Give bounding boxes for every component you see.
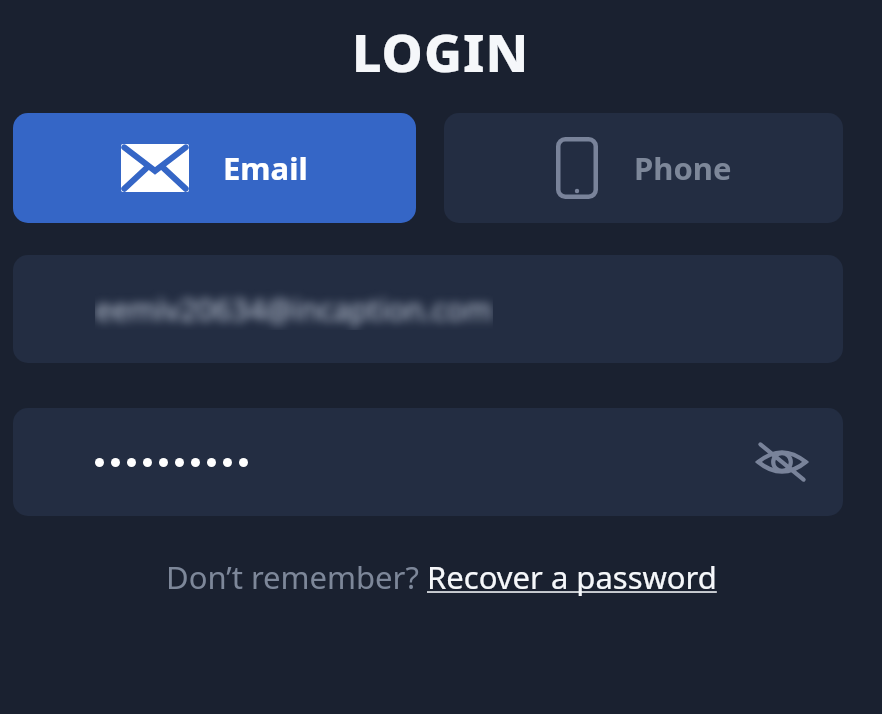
staticText: Don’t remember? (166, 556, 427, 598)
staticText: Email (223, 147, 308, 189)
button[interactable]: Email (13, 113, 416, 223)
staticText: LOGIN (352, 16, 530, 87)
button[interactable]: eemiv20634@incaption.com (13, 255, 843, 363)
button[interactable]: Recover a password (427, 556, 717, 598)
staticText: eemiv20634@incaption.com (95, 289, 493, 330)
staticText: Recover a password (427, 556, 717, 598)
staticText: Phone (634, 147, 732, 189)
button[interactable]: Show password (753, 433, 811, 491)
button[interactable]: Phone (444, 113, 843, 223)
button[interactable]: Show password (13, 408, 843, 516)
